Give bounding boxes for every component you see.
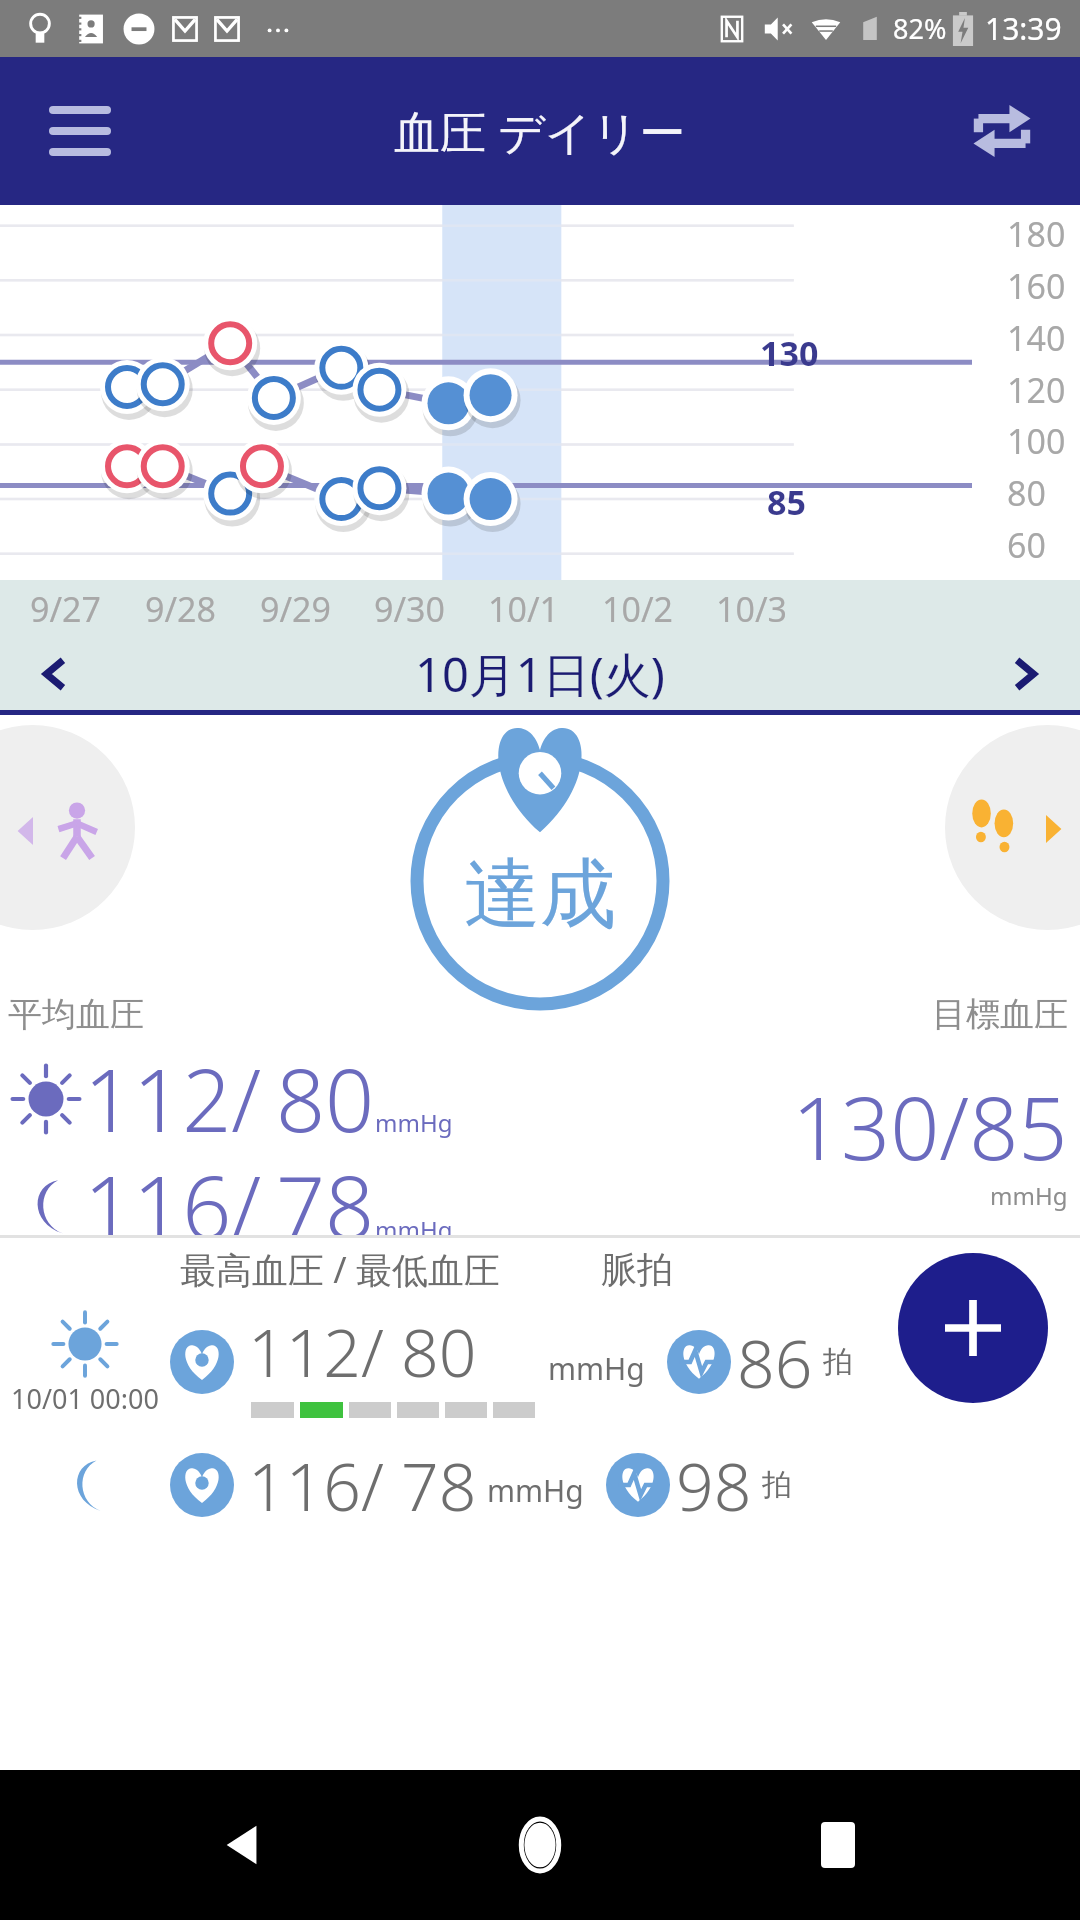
staticText: 140 [1007,315,1066,361]
staticText: 10/3 [716,586,787,632]
staticText: 10/1 [488,586,559,632]
staticText: 80 [276,1040,375,1157]
staticText: 10/2 [602,586,673,632]
button[interactable]: Home [485,1790,595,1900]
staticText: 78 [276,1147,375,1264]
button[interactable]: Sync [960,89,1044,173]
staticText: 160 [1007,263,1066,309]
staticText: 最高血圧 / 最低血圧 [180,1245,501,1294]
staticText: mmHg [548,1348,645,1389]
staticText: 80 [1007,470,1046,516]
staticText: 86 [737,1317,813,1407]
staticText: 平均血圧 [8,993,144,1036]
staticText: 116/ [84,1147,262,1264]
staticText: mmHg [375,1106,453,1139]
staticText: 85 [767,479,806,525]
staticText: 130/85 [792,1068,1068,1185]
staticText: 脈拍 [601,1247,673,1292]
staticText: 血圧 デイリー [394,100,686,163]
staticText: 達成 [464,847,616,943]
staticText: 130 [760,330,819,376]
staticText: 180 [1007,211,1066,257]
staticText: 10月1日(火) [415,642,665,706]
staticText: 82% [893,10,947,47]
button[interactable]: Previous day [0,638,110,710]
button[interactable]: Menu [38,89,122,173]
staticText: 13:39 [985,8,1062,49]
staticText: mmHg [990,1179,1068,1212]
button[interactable]: Add measurement [898,1253,1048,1403]
button[interactable]: Steps [945,725,1080,930]
staticText: 拍 [762,1466,792,1504]
staticText: 拍 [823,1343,853,1381]
button[interactable]: 116/ 78 [0,1424,1080,1545]
staticText: 9/30 [374,586,445,632]
staticText: 112/ 80 [248,1306,477,1396]
staticText: mmHg [487,1470,584,1511]
staticText: 9/29 [260,586,331,632]
staticText: 100 [1007,418,1066,464]
staticText: 116/ 78 [248,1440,477,1530]
staticText: 98 [676,1440,752,1530]
button[interactable]: Recents [783,1790,893,1900]
staticText: mmHg [375,1213,453,1246]
button[interactable]: Next day [970,638,1080,710]
staticText: 60 [1007,522,1046,568]
button[interactable]: Activity [0,725,135,930]
button[interactable]: Back [188,1790,298,1900]
staticText: 120 [1007,367,1066,413]
staticText: 9/27 [30,586,101,632]
staticText: 9/28 [145,586,216,632]
staticText: 目標血圧 [932,993,1068,1036]
staticText: 112/ [84,1040,262,1157]
button[interactable]: 10/01 00:00 [0,1300,1080,1424]
staticText: 10/01 00:00 [11,1380,159,1417]
